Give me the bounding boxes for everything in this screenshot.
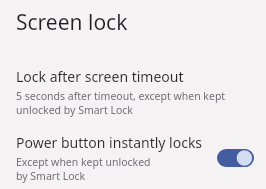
staticText: 5 seconds after timeout, except when kep… — [16, 89, 242, 117]
button[interactable]: Power button instantly locks — [0, 133, 266, 183]
button[interactable]: Lock after screen timeout — [0, 67, 266, 117]
staticText: Except when kept unlocked by Smart Lock — [16, 155, 158, 183]
staticText: Screen lock — [16, 8, 128, 37]
button[interactable]: Power button instantly locks toggle — [212, 144, 258, 172]
staticText: Lock after screen timeout — [16, 67, 184, 86]
staticText: Power button instantly locks — [16, 133, 203, 152]
